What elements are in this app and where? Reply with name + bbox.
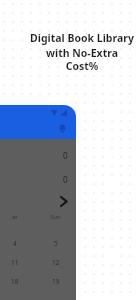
staticText: 0: [63, 174, 68, 185]
staticText: Digital Book Library: [30, 31, 134, 45]
button[interactable]: Notifications: [56, 122, 69, 135]
staticText: with No-Extra Cost%: [30, 46, 134, 73]
staticText: 12: [52, 258, 60, 267]
staticText: 5: [54, 239, 58, 248]
staticText: 19: [52, 277, 60, 286]
staticText: at: [12, 213, 18, 221]
staticText: 11: [11, 258, 19, 267]
staticText: 0: [63, 150, 68, 161]
button[interactable]: 11: [0, 253, 76, 272]
staticText: Sun: [50, 213, 61, 221]
button[interactable]: 4: [0, 234, 76, 253]
staticText: 4: [13, 239, 17, 248]
staticText: 18: [11, 277, 19, 286]
button[interactable]: 18: [0, 272, 76, 291]
button[interactable]: Next month: [0, 192, 76, 210]
button[interactable]: 0: [0, 144, 76, 166]
